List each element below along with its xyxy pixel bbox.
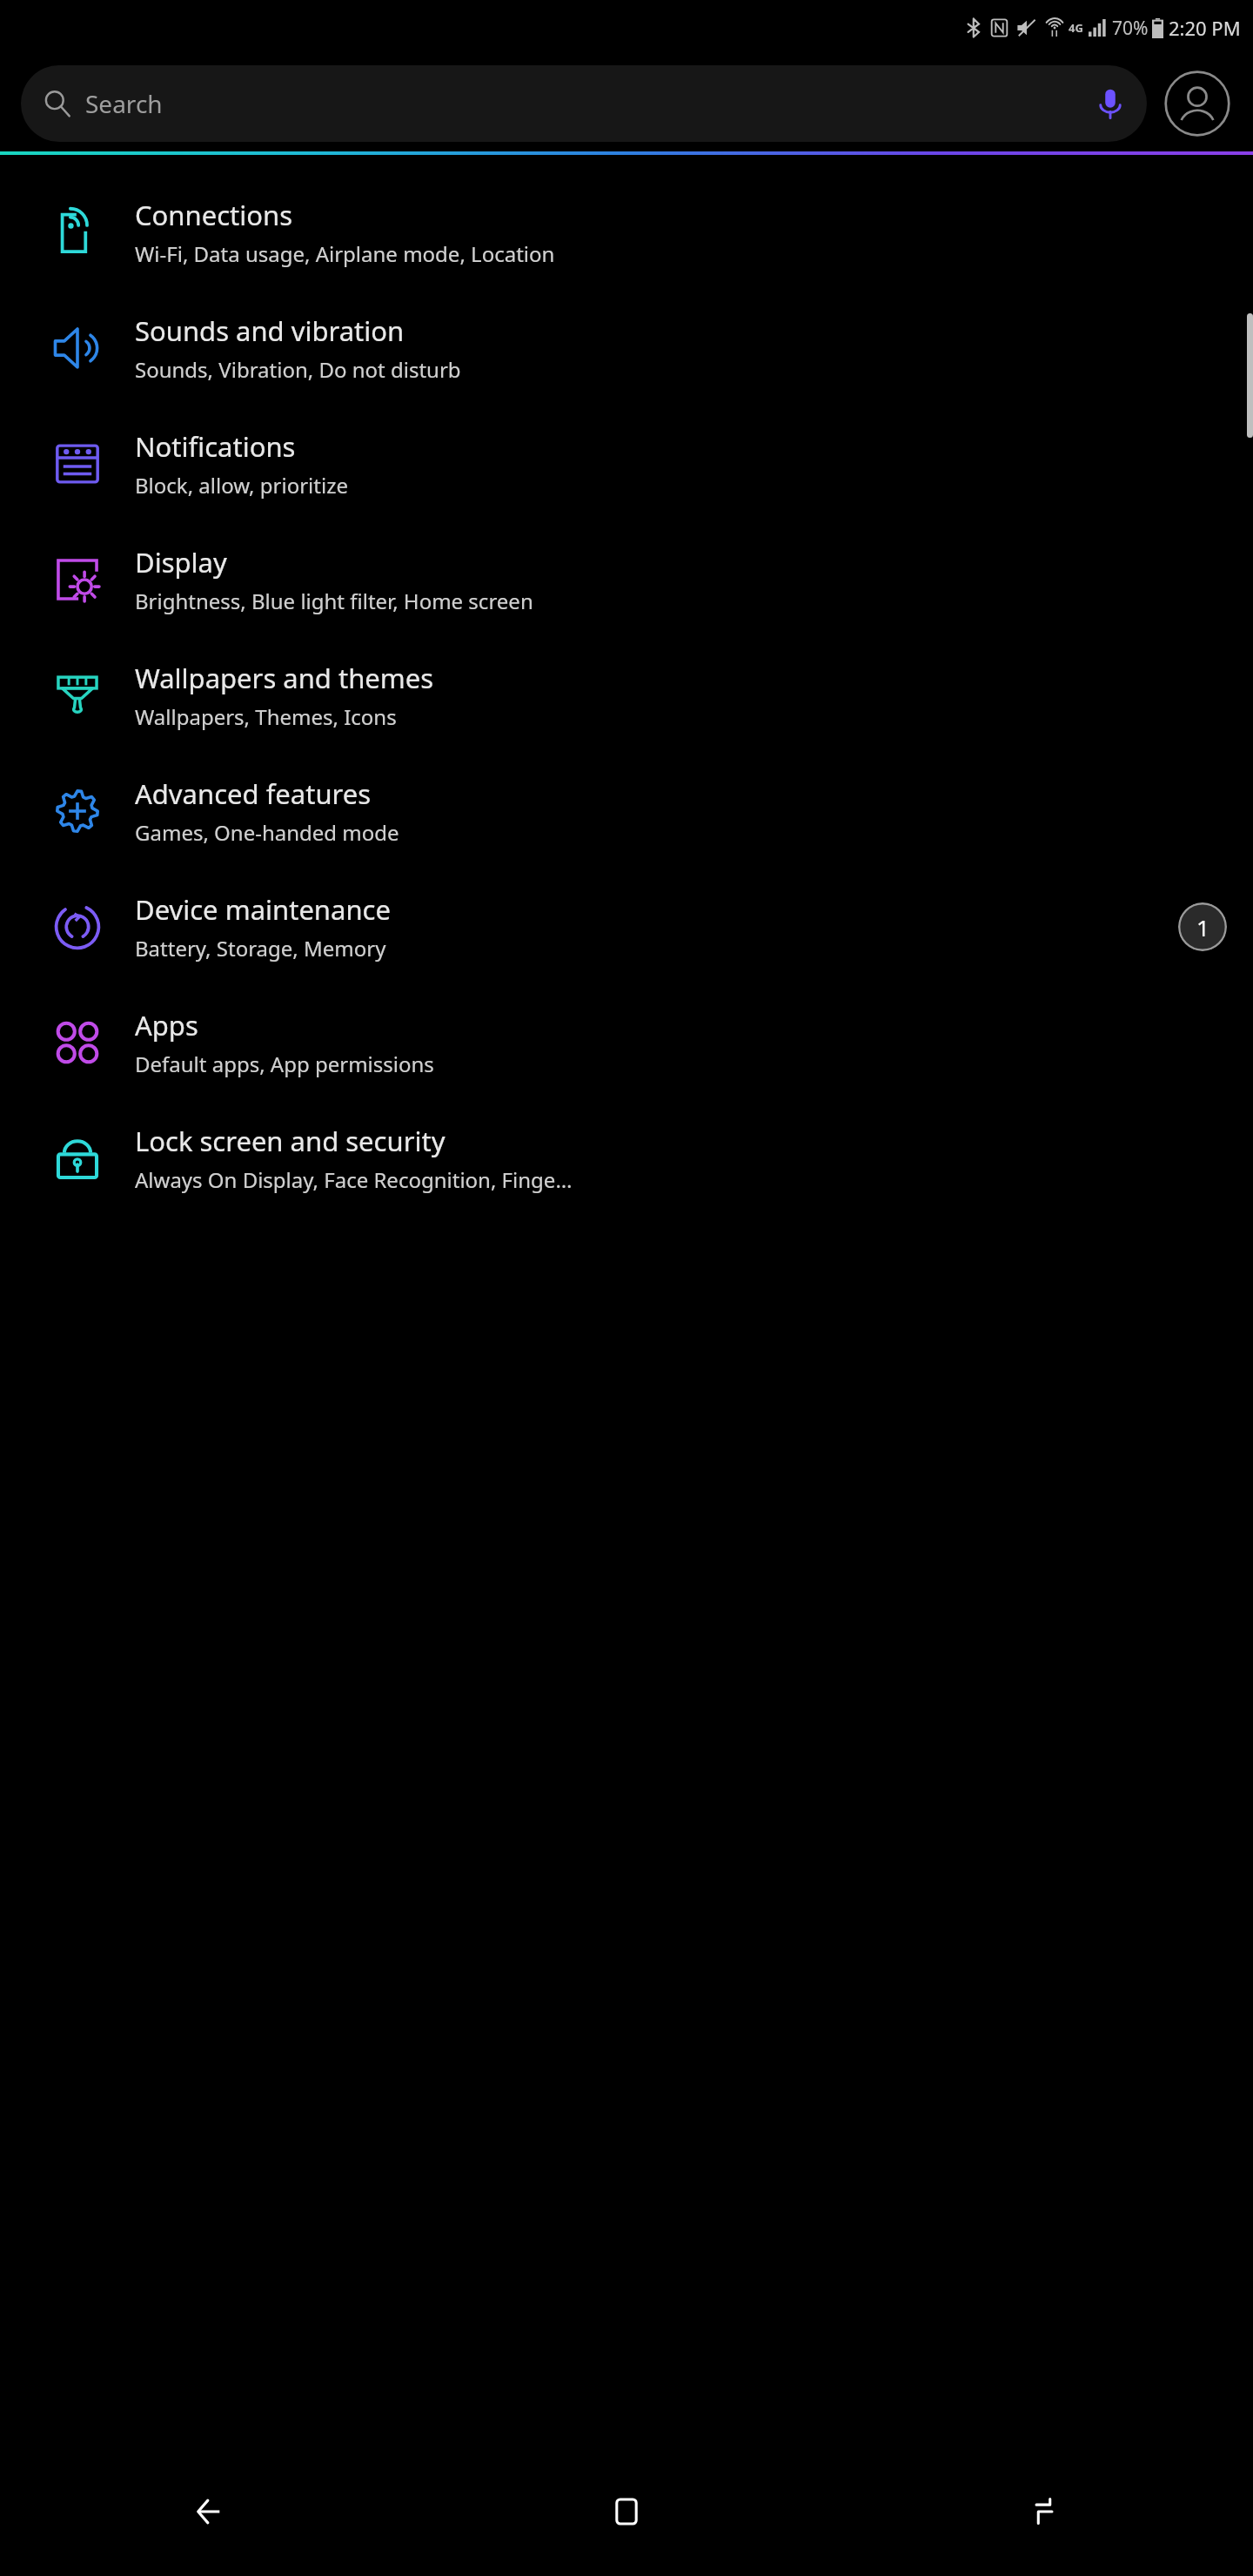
button[interactable]: Wallpapers and themes (0, 637, 1253, 753)
staticText: Advanced features (135, 775, 372, 812)
staticText: Always On Display, Face Recognition, Fin… (135, 1165, 573, 1194)
button[interactable]: Advanced features (0, 753, 1253, 869)
button[interactable]: Device maintenance (0, 869, 1253, 984)
staticText: 1 (1196, 912, 1209, 943)
staticText: Device maintenance (135, 891, 391, 928)
staticText: Games, One-handed mode (135, 818, 399, 847)
staticText: Connections (135, 197, 292, 233)
staticText: 70% (1112, 16, 1149, 41)
staticText: Sounds and vibration (135, 312, 405, 349)
staticText: 2:20 PM (1169, 15, 1241, 41)
button[interactable]: Lock screen and security (0, 1100, 1253, 1216)
staticText: Battery, Storage, Memory (135, 934, 386, 963)
button[interactable]: Apps (0, 984, 1253, 1100)
button[interactable]: Back (0, 2447, 418, 2576)
button[interactable]: Voice search (1093, 86, 1128, 121)
staticText: Search (85, 87, 163, 120)
staticText: Wi-Fi, Data usage, Airplane mode, Locati… (135, 239, 555, 268)
staticText: Apps (135, 1007, 198, 1043)
button[interactable]: Search (21, 65, 1147, 142)
staticText: Default apps, App permissions (135, 1050, 434, 1078)
staticText: Display (135, 544, 227, 580)
button[interactable]: Notifications (0, 406, 1253, 521)
staticText: Lock screen and security (135, 1123, 446, 1159)
staticText: Brightness, Blue light filter, Home scre… (135, 587, 533, 615)
button[interactable]: Home (418, 2447, 835, 2576)
staticText: Wallpapers, Themes, Icons (135, 702, 397, 731)
staticText: Wallpapers and themes (135, 660, 434, 696)
button[interactable]: Display (0, 521, 1253, 637)
button[interactable]: Connections (0, 174, 1253, 290)
button[interactable]: Recents (835, 2447, 1253, 2576)
staticText: Block, allow, prioritize (135, 471, 348, 500)
staticText: Notifications (135, 428, 296, 465)
button[interactable]: Account (1163, 69, 1232, 138)
staticText: 4G (1069, 20, 1083, 36)
staticText: Sounds, Vibration, Do not disturb (135, 355, 461, 384)
button[interactable]: Sounds and vibration (0, 290, 1253, 406)
